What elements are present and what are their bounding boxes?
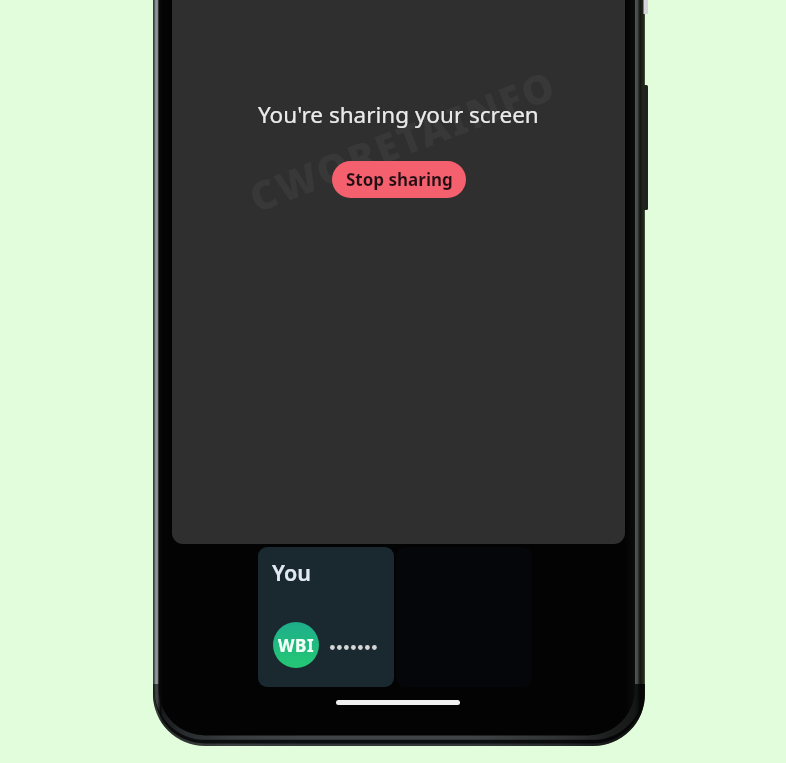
staticText: Stop sharing <box>346 168 453 191</box>
staticText: You <box>272 558 311 587</box>
staticText: You're sharing your screen <box>258 99 539 130</box>
staticText: CWORETAINFO <box>241 57 564 223</box>
staticText: WBI <box>278 634 315 657</box>
button[interactable]: Stop sharing <box>332 161 466 198</box>
button[interactable]: You <box>258 547 394 687</box>
